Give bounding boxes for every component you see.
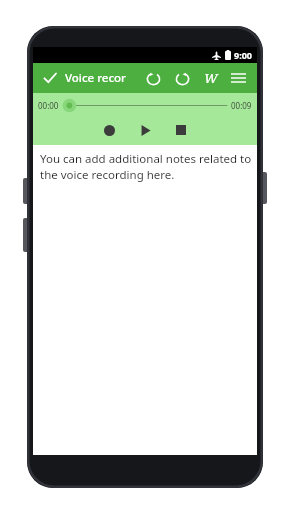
button[interactable]: Redo bbox=[169, 65, 195, 91]
button[interactable]: Record bbox=[96, 117, 122, 143]
staticText: You can add additional notes related to … bbox=[40, 151, 253, 183]
button[interactable]: Undo bbox=[140, 65, 166, 91]
button[interactable]: Formatting bbox=[198, 65, 224, 91]
staticText: 9:00 bbox=[234, 49, 252, 61]
button[interactable]: Stop bbox=[168, 117, 194, 143]
button[interactable]: Done bbox=[39, 67, 61, 89]
staticText: 00:00 bbox=[38, 100, 59, 111]
button[interactable]: Voice recor bbox=[65, 70, 126, 86]
staticText: W bbox=[204, 69, 218, 87]
button[interactable]: Menu bbox=[225, 65, 251, 91]
button[interactable]: Play bbox=[132, 117, 158, 143]
staticText: 00:09 bbox=[231, 100, 252, 111]
button[interactable]: Playback position bbox=[61, 97, 229, 114]
